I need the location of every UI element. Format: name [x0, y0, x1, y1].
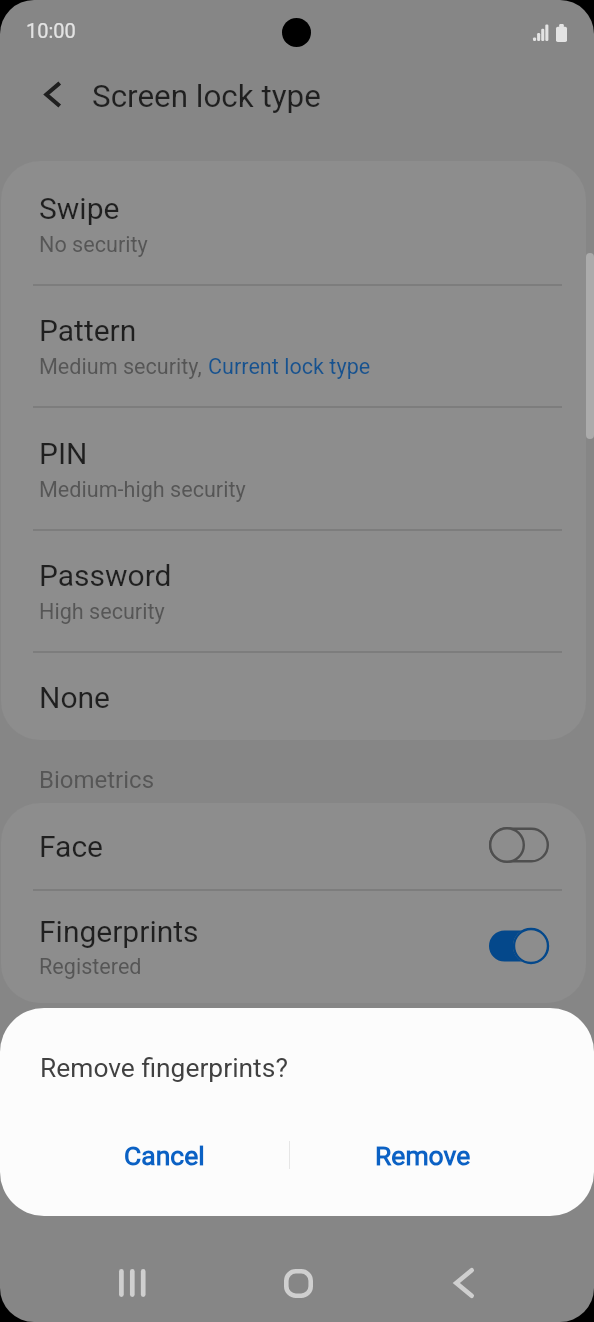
staticText: Password [39, 558, 172, 593]
staticText: Swipe [39, 191, 120, 226]
button[interactable]: Recent apps [88, 1239, 176, 1322]
staticText: Medium-high security [39, 477, 246, 502]
staticText: PIN [39, 436, 88, 471]
button[interactable]: Back [420, 1239, 508, 1322]
button[interactable]: Screen lock type [92, 78, 321, 114]
button[interactable]: Swipe [1, 161, 586, 283]
staticText: No security [39, 232, 148, 257]
button[interactable]: None [1, 650, 586, 740]
staticText: Cancel [124, 1140, 205, 1171]
button[interactable]: Home [254, 1239, 342, 1322]
button[interactable]: Fingerprints [1, 889, 586, 975]
staticText: Medium security, [39, 354, 208, 379]
button[interactable]: Cancel [39, 1124, 289, 1186]
button[interactable]: Face off [487, 825, 553, 865]
staticText: High security [39, 599, 165, 624]
staticText: Fingerprints [39, 914, 199, 949]
staticText: Registered [39, 954, 142, 979]
staticText: Biometrics [39, 766, 155, 794]
staticText: None [39, 680, 110, 715]
staticText: Remove [375, 1140, 471, 1171]
button[interactable]: Remove [290, 1124, 556, 1186]
staticText: Pattern [39, 313, 137, 348]
button[interactable]: PIN [1, 406, 586, 528]
button[interactable]: Fingerprints on [487, 926, 553, 966]
button[interactable]: Pattern [1, 283, 586, 405]
staticText: 10:00 [26, 19, 76, 42]
staticText: Screen lock type [92, 78, 321, 114]
button[interactable]: Face [1, 803, 586, 889]
button[interactable]: Navigate up [24, 70, 80, 126]
button[interactable]: Password [1, 528, 586, 650]
staticText: Current lock type [208, 354, 371, 379]
staticText: Remove fingerprints? [40, 1053, 288, 1084]
staticText: Face [39, 829, 104, 864]
